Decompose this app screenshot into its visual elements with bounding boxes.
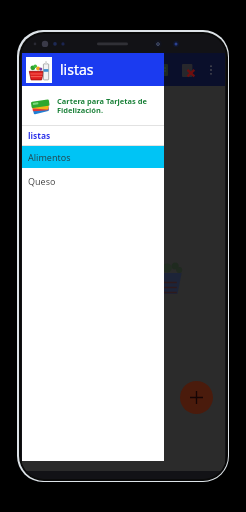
staticText: Queso (28, 175, 56, 187)
button[interactable]: Queso (22, 168, 164, 194)
staticText: listas (60, 60, 94, 79)
button[interactable]: Más opciones (202, 61, 220, 79)
button[interactable]: Añadir (180, 381, 213, 414)
staticText: Cartera para Tarjetas de Fidelización. (57, 96, 164, 115)
button[interactable]: Cartera para Tarjetas de Fidelización. (22, 86, 164, 125)
button[interactable]: Lista (152, 60, 172, 80)
button[interactable]: listas (22, 126, 164, 145)
button[interactable]: Borrar lista (178, 60, 198, 80)
button[interactable]: listas (22, 53, 164, 86)
staticText: Alimentos (28, 151, 71, 163)
staticText: listas (28, 130, 51, 142)
button[interactable]: Alimentos (22, 146, 164, 168)
